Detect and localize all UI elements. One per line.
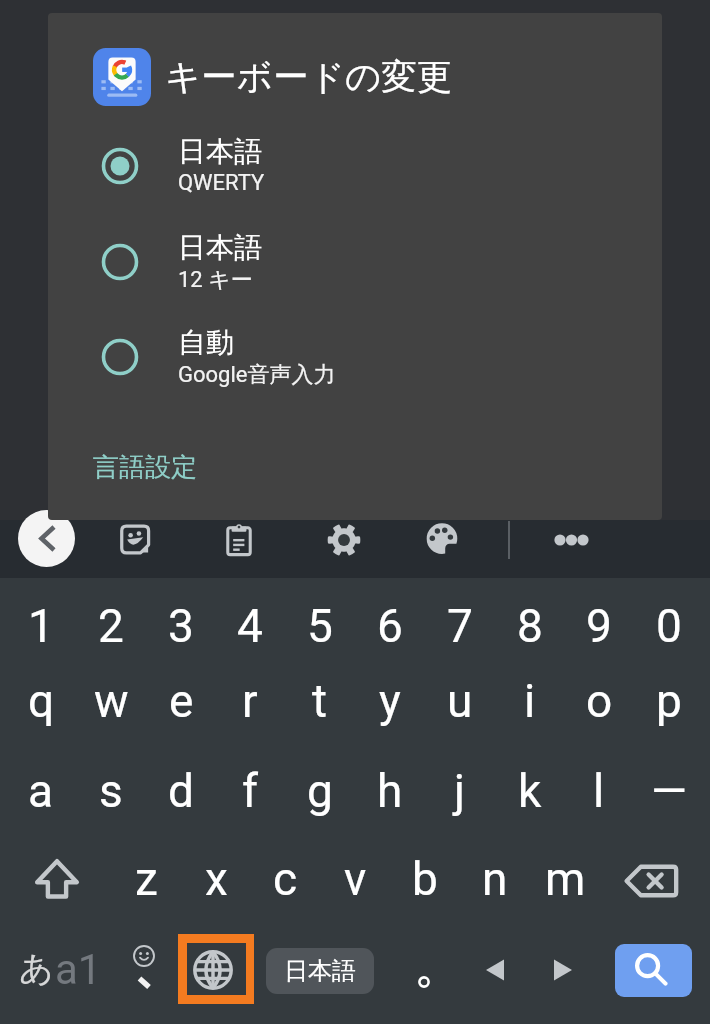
button[interactable]: l: [564, 756, 634, 826]
staticText: p: [656, 674, 682, 728]
staticText: 日本語: [178, 134, 262, 169]
staticText: 12 キー: [178, 266, 253, 294]
staticText: x: [205, 852, 228, 906]
staticText: r: [242, 674, 258, 728]
button[interactable]: 3: [146, 591, 216, 661]
button[interactable]: r: [215, 666, 285, 736]
button[interactable]: b: [390, 844, 460, 914]
button[interactable]: Stickers: [118, 523, 152, 557]
button[interactable]: y: [355, 666, 425, 736]
button[interactable]: 9: [564, 591, 634, 661]
staticText: 言語設定: [93, 451, 197, 484]
staticText: y: [379, 674, 401, 728]
staticText: z: [135, 852, 158, 906]
staticText: 自動: [178, 325, 234, 360]
staticText: 0: [656, 599, 682, 653]
button[interactable]: Change keyboard: [185, 942, 241, 998]
button[interactable]: 2: [76, 591, 146, 661]
staticText: h: [377, 764, 403, 818]
button[interactable]: 日本語: [266, 948, 374, 994]
staticText: u: [447, 674, 473, 728]
staticText: v: [344, 852, 367, 906]
button[interactable]: 日本語: [48, 214, 662, 310]
staticText: w: [94, 674, 129, 728]
button[interactable]: t: [285, 666, 355, 736]
button[interactable]: k: [495, 756, 565, 826]
staticText: o: [586, 674, 613, 728]
button[interactable]: Full stop: [393, 939, 455, 1001]
button[interactable]: q: [6, 666, 76, 736]
button[interactable]: n: [460, 844, 530, 914]
button[interactable]: j: [425, 756, 495, 826]
button[interactable]: s: [76, 756, 146, 826]
button[interactable]: 7: [425, 591, 495, 661]
staticText: m: [545, 852, 586, 906]
staticText: —: [651, 764, 687, 818]
button[interactable]: あ: [0, 936, 110, 1004]
staticText: 5: [307, 599, 333, 653]
staticText: b: [412, 852, 438, 906]
staticText: t: [312, 674, 328, 728]
button[interactable]: a: [6, 756, 76, 826]
staticText: d: [168, 764, 194, 818]
button[interactable]: c: [250, 844, 320, 914]
staticText: 7: [447, 599, 473, 653]
staticText: 1: [28, 599, 54, 653]
button[interactable]: p: [634, 666, 704, 736]
staticText: a: [28, 764, 54, 818]
button[interactable]: h: [355, 756, 425, 826]
button[interactable]: 4: [215, 591, 285, 661]
button[interactable]: Backspace: [621, 850, 683, 912]
staticText: 日本語: [284, 956, 356, 986]
button[interactable]: 1: [6, 591, 76, 661]
button[interactable]: x: [181, 844, 251, 914]
staticText: k: [518, 764, 542, 818]
button[interactable]: Move cursor left: [467, 942, 523, 998]
button[interactable]: i: [495, 666, 565, 736]
staticText: l: [593, 764, 605, 818]
staticText: 8: [517, 599, 543, 653]
button[interactable]: 8: [495, 591, 565, 661]
button[interactable]: 6: [355, 591, 425, 661]
staticText: j: [454, 764, 466, 818]
button[interactable]: d: [146, 756, 216, 826]
button[interactable]: m: [530, 844, 600, 914]
staticText: q: [28, 674, 55, 728]
button[interactable]: Theme: [426, 523, 460, 557]
staticText: Google音声入力: [178, 361, 336, 389]
staticText: 3: [168, 599, 194, 653]
staticText: g: [307, 764, 333, 818]
button[interactable]: Back: [18, 510, 75, 567]
staticText: 6: [377, 599, 403, 653]
button[interactable]: —: [634, 756, 704, 826]
button[interactable]: 0: [634, 591, 704, 661]
button[interactable]: u: [425, 666, 495, 736]
button[interactable]: Clipboard: [222, 523, 256, 557]
button[interactable]: More options: [539, 521, 603, 559]
button[interactable]: Search: [615, 944, 692, 997]
button[interactable]: g: [285, 756, 355, 826]
button[interactable]: w: [76, 666, 146, 736]
button[interactable]: z: [111, 844, 181, 914]
button[interactable]: f: [215, 756, 285, 826]
button[interactable]: 日本語: [48, 118, 662, 214]
button[interactable]: Emoji and handwriting: [115, 941, 173, 999]
button[interactable]: v: [320, 844, 390, 914]
button[interactable]: Shift: [26, 850, 88, 912]
button[interactable]: 言語設定: [78, 438, 278, 496]
staticText: f: [242, 764, 258, 818]
staticText: 4: [237, 599, 263, 653]
button[interactable]: 5: [285, 591, 355, 661]
button[interactable]: 自動: [48, 309, 662, 405]
staticText: a1: [55, 945, 102, 994]
button[interactable]: Move cursor right: [535, 942, 591, 998]
staticText: あ: [19, 947, 54, 990]
staticText: QWERTY: [178, 170, 265, 196]
button[interactable]: o: [564, 666, 634, 736]
staticText: キーボードの変更: [165, 55, 453, 100]
staticText: 2: [98, 599, 124, 653]
button[interactable]: Settings: [327, 523, 361, 557]
staticText: n: [482, 852, 508, 906]
button[interactable]: e: [146, 666, 216, 736]
staticText: c: [273, 852, 298, 906]
